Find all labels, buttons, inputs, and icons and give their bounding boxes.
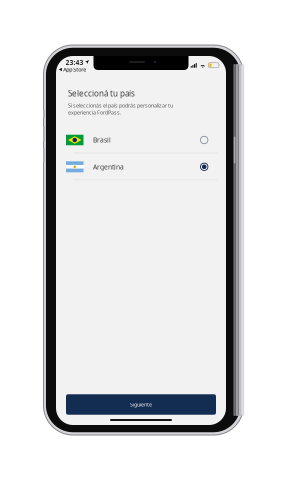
- button[interactable]: Brasil: [56, 126, 226, 153]
- button[interactable]: Siguiente: [66, 394, 216, 415]
- staticText: 23:43: [65, 58, 83, 67]
- staticText: Seleccioná tu país: [68, 88, 135, 99]
- staticText: Argentina: [93, 162, 124, 171]
- staticText: Si seleccionás el país podrás personaliz…: [68, 102, 173, 109]
- staticText: Siguiente: [130, 401, 152, 408]
- staticText: experiencia FordPass.: [68, 109, 121, 116]
- staticText: Brasil: [93, 136, 111, 144]
- staticText: App Store: [63, 66, 86, 73]
- button[interactable]: Argentina: [56, 153, 226, 180]
